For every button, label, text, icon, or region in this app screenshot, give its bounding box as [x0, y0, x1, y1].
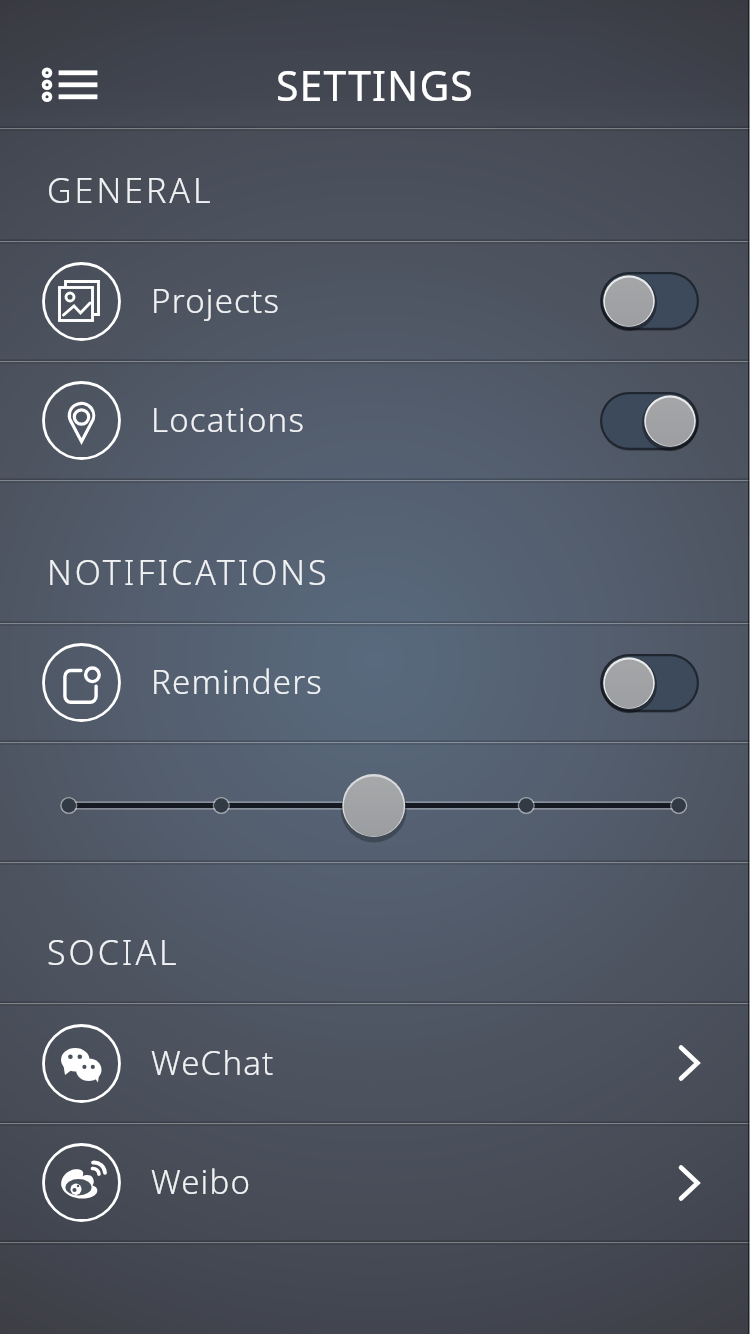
staticText: Reminders — [151, 659, 323, 704]
staticText: WeChat — [151, 1040, 275, 1085]
button[interactable]: Frequency — [0, 742, 750, 862]
button[interactable]: WeChat — [0, 1003, 750, 1123]
button[interactable]: Toggle on — [600, 392, 699, 450]
button[interactable]: Locations — [0, 361, 750, 480]
button[interactable]: Menu — [36, 57, 102, 123]
button[interactable]: Open — [670, 1161, 714, 1205]
staticText: Projects — [151, 278, 281, 323]
staticText: SETTINGS — [276, 57, 474, 113]
staticText: Locations — [151, 397, 306, 442]
button[interactable]: Projects — [0, 241, 750, 361]
staticText: Weibo — [151, 1159, 252, 1204]
button[interactable]: Open — [670, 1041, 714, 1085]
button[interactable]: Reminders — [0, 623, 750, 742]
staticText: GENERAL — [47, 167, 214, 213]
staticText: SOCIAL — [47, 929, 180, 975]
button[interactable]: Weibo — [0, 1123, 750, 1242]
staticText: NOTIFICATIONS — [47, 549, 330, 595]
button[interactable]: Toggle off — [600, 654, 699, 712]
button[interactable]: Toggle off — [600, 272, 699, 330]
